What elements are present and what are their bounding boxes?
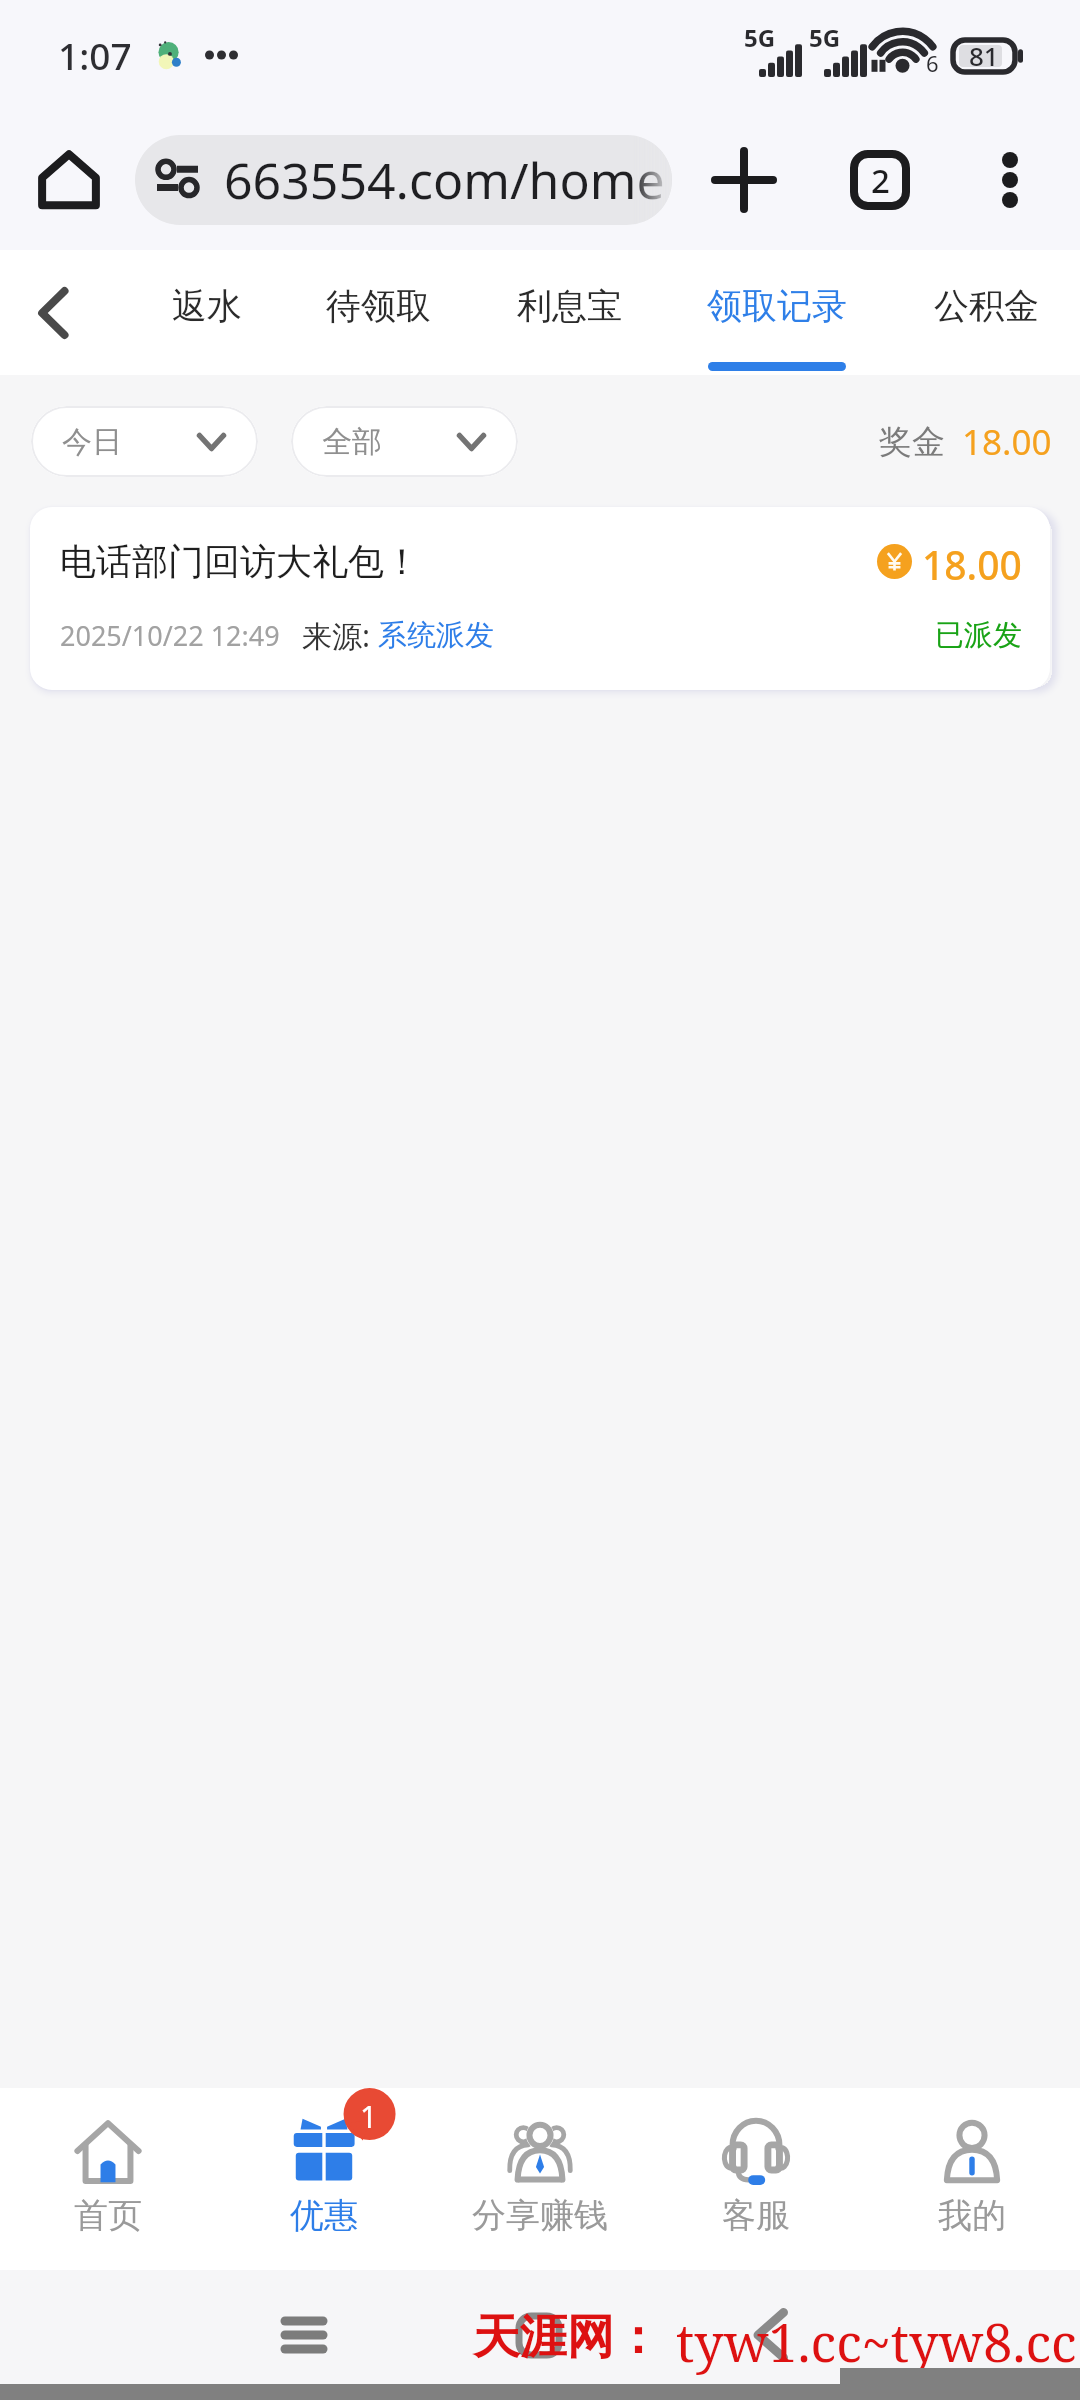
button[interactable]: New tab: [705, 141, 783, 219]
staticText: 18.00: [922, 538, 1022, 584]
staticText: 全部: [322, 423, 382, 461]
button[interactable]: 公积金: [894, 250, 1078, 375]
button[interactable]: 待领取: [286, 250, 470, 375]
button[interactable]: 客服: [648, 2088, 864, 2270]
staticText: 分享赚钱: [472, 2194, 608, 2237]
staticText: 返水: [172, 284, 242, 328]
button[interactable]: 今日: [31, 406, 258, 477]
staticText: 18.00: [962, 418, 1052, 466]
button[interactable]: 利息宝: [469, 250, 669, 375]
button[interactable]: 全部: [291, 406, 518, 477]
staticText: 客服: [722, 2194, 790, 2237]
staticText: 2025/10/22 12:49: [60, 617, 280, 654]
staticText: 优惠: [290, 2194, 358, 2237]
button[interactable]: 663554.com/home: [135, 135, 672, 225]
button[interactable]: 领取记录: [677, 250, 877, 375]
staticText: 6: [926, 48, 939, 78]
staticText: 5G: [744, 21, 776, 54]
button[interactable]: Tabs: [841, 141, 919, 219]
button[interactable]: 1: [216, 2088, 432, 2270]
button[interactable]: 返水: [117, 250, 297, 375]
staticText: 已派发: [935, 617, 1022, 654]
staticText: 待领取: [326, 284, 431, 328]
staticText: 公积金: [934, 284, 1039, 328]
staticText: 系统派发: [378, 617, 494, 654]
staticText: 663554.com/home: [224, 146, 665, 214]
button[interactable]: 我的: [864, 2088, 1080, 2270]
button[interactable]: 分享赚钱: [432, 2088, 648, 2270]
staticText: 首页: [74, 2194, 142, 2237]
button[interactable]: Menu: [265, 2270, 343, 2400]
staticText: 今日: [62, 423, 122, 461]
staticText: 电话部门回访大礼包！: [60, 539, 420, 584]
staticText: 天涯网：: [473, 2308, 661, 2367]
button[interactable]: Back: [0, 250, 106, 375]
button[interactable]: 电话部门回访大礼包！: [30, 507, 1050, 690]
staticText: 81: [969, 38, 999, 73]
button[interactable]: Home: [30, 141, 108, 219]
staticText: 利息宝: [517, 284, 622, 328]
staticText: tyw1.cc~tyw8.cc: [676, 2306, 1077, 2377]
staticText: 奖金: [879, 421, 945, 463]
staticText: 来源:: [302, 615, 378, 656]
staticText: 我的: [938, 2194, 1006, 2237]
staticText: 2: [871, 158, 890, 203]
staticText: 领取记录: [707, 284, 847, 328]
button[interactable]: More options: [971, 141, 1049, 219]
staticText: 1:07: [58, 30, 132, 80]
button[interactable]: 首页: [0, 2088, 216, 2270]
staticText: 5G: [809, 21, 841, 54]
staticText: 1: [360, 2096, 378, 2137]
